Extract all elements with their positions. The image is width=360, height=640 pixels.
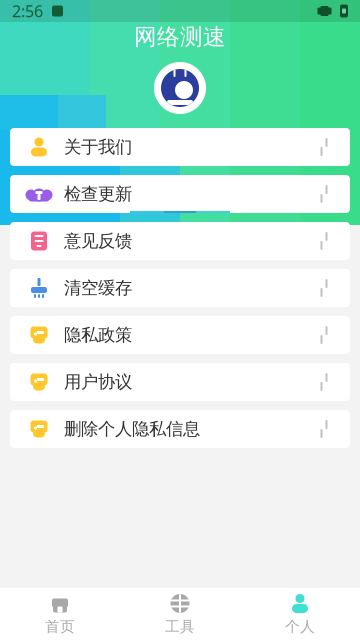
button[interactable]: 关于我们	[10, 128, 350, 166]
button[interactable]: 隐私政策	[10, 316, 350, 354]
staticText: 2:56	[12, 0, 43, 22]
staticText: 意见反馈	[64, 230, 132, 252]
button[interactable]: 个人	[240, 588, 360, 640]
staticText: 删除个人隐私信息	[64, 418, 200, 440]
staticText: 网络测速	[134, 23, 226, 51]
staticText: 检查更新	[64, 183, 132, 205]
button[interactable]: 删除个人隐私信息	[10, 410, 350, 448]
staticText: 工具	[165, 617, 195, 635]
button[interactable]: 清空缓存	[10, 269, 350, 307]
button[interactable]: 意见反馈	[10, 222, 350, 260]
staticText: 个人	[285, 617, 315, 635]
button[interactable]: 检查更新	[10, 175, 350, 213]
staticText: 隐私政策	[64, 324, 132, 346]
button[interactable]: 用户协议	[10, 363, 350, 401]
button[interactable]: 首页	[0, 588, 120, 640]
staticText: 清空缓存	[64, 277, 132, 299]
staticText: 首页	[45, 617, 75, 635]
button[interactable]: 工具	[120, 588, 240, 640]
staticText: 关于我们	[64, 136, 132, 158]
staticText: 用户协议	[64, 371, 132, 393]
